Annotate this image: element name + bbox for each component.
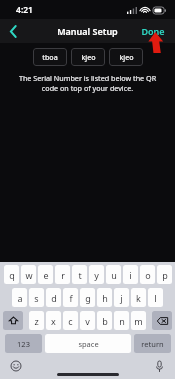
button[interactable]: b (97, 311, 112, 330)
staticText: z (34, 315, 39, 327)
staticText: The Serial Number is listed below the QR… (14, 73, 161, 93)
button[interactable]: x (46, 311, 61, 330)
staticText: r (61, 269, 65, 281)
button[interactable]: t (72, 265, 87, 284)
staticText: return (141, 339, 164, 349)
button[interactable]: d (46, 288, 61, 307)
staticText: 123 (17, 339, 30, 349)
button[interactable]: Backspace (152, 311, 172, 330)
button[interactable]: o (140, 265, 155, 284)
button[interactable]: m (131, 311, 146, 330)
button[interactable]: a (12, 288, 27, 307)
staticText: i (129, 269, 132, 281)
button[interactable]: v (80, 311, 95, 330)
staticText: j (120, 292, 123, 304)
button[interactable]: e (38, 265, 53, 284)
button[interactable]: l (148, 288, 163, 307)
button[interactable]: p (157, 265, 172, 284)
button[interactable]: f (63, 288, 78, 307)
staticText: p (162, 269, 168, 281)
button[interactable]: return (134, 334, 171, 353)
button[interactable]: tboa (33, 48, 67, 66)
staticText: h (102, 292, 108, 304)
staticText: q (9, 269, 15, 281)
button[interactable]: n (114, 311, 129, 330)
button[interactable]: z (29, 311, 44, 330)
button[interactable]: u (106, 265, 121, 284)
staticText: v (85, 315, 90, 327)
staticText: t (78, 269, 82, 281)
staticText: a (17, 292, 23, 304)
button[interactable]: c (63, 311, 78, 330)
button[interactable]: s (29, 288, 44, 307)
button[interactable]: space (45, 334, 131, 353)
button[interactable]: Back (0, 19, 26, 43)
button[interactable]: kjeo (109, 48, 143, 66)
staticText: w (25, 269, 33, 281)
button[interactable]: Dictation (152, 359, 166, 373)
staticText: e (43, 269, 49, 281)
button[interactable]: r (55, 265, 70, 284)
staticText: b (102, 315, 108, 327)
button[interactable]: Done (141, 19, 165, 43)
staticText: f (69, 292, 73, 304)
staticText: k (136, 292, 141, 304)
staticText: x (51, 315, 56, 327)
button[interactable]: j (114, 288, 129, 307)
button[interactable]: h (97, 288, 112, 307)
staticText: c (68, 315, 73, 327)
staticText: m (134, 315, 143, 327)
staticText: Manual Setup (57, 25, 118, 37)
staticText: y (94, 269, 99, 281)
staticText: kjeo (81, 52, 96, 62)
button[interactable]: Shift (3, 311, 23, 330)
staticText: kjeo (119, 52, 134, 62)
button[interactable]: Emoji (9, 359, 23, 373)
staticText: n (119, 315, 125, 327)
staticText: o (145, 269, 151, 281)
button[interactable]: 123 (5, 334, 42, 353)
staticText: s (34, 292, 39, 304)
button[interactable]: kjeo (71, 48, 105, 66)
staticText: tboa (42, 52, 58, 62)
staticText: l (154, 292, 157, 304)
staticText: Done (141, 25, 165, 37)
button[interactable]: y (89, 265, 104, 284)
button[interactable]: q (4, 265, 19, 284)
staticText: d (51, 292, 57, 304)
staticText: u (111, 269, 117, 281)
button[interactable]: i (123, 265, 138, 284)
button[interactable]: w (21, 265, 36, 284)
staticText: space (78, 339, 99, 349)
button[interactable]: g (80, 288, 95, 307)
staticText: 4:21 (16, 4, 33, 16)
staticText: g (85, 292, 91, 304)
button[interactable]: k (131, 288, 146, 307)
